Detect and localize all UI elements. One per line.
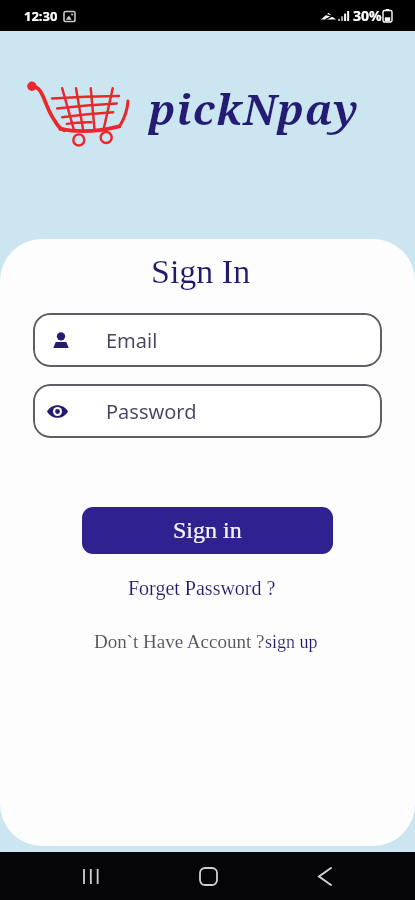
staticText: Sign in	[173, 517, 242, 544]
button[interactable]: Sign in	[82, 507, 333, 554]
staticText: Don`t Have Account ?	[94, 631, 265, 652]
button[interactable]: Home	[180, 852, 236, 900]
button[interactable]: Forget Password ?	[118, 574, 286, 602]
staticText: sign up	[265, 632, 318, 652]
button[interactable]: Password	[33, 384, 382, 438]
staticText: Sign In	[151, 253, 251, 291]
button[interactable]: Back	[297, 852, 353, 900]
staticText: 12:30	[24, 7, 58, 25]
button[interactable]: Recent apps	[62, 852, 118, 900]
staticText: 30%	[353, 6, 382, 25]
button[interactable]: Email	[33, 313, 382, 367]
staticText: Email	[106, 327, 158, 354]
staticText: Forget Password ?	[128, 577, 276, 599]
staticText: Password	[106, 398, 197, 425]
staticText: pickNpay	[149, 80, 360, 137]
button[interactable]: sign up	[265, 632, 318, 652]
